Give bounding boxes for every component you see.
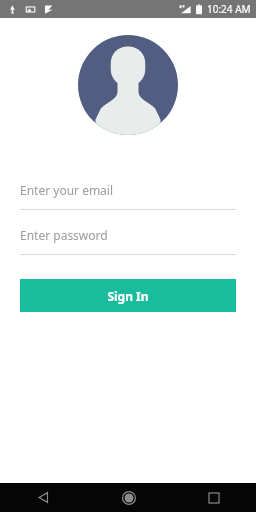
staticText: Enter password	[20, 227, 108, 243]
button[interactable]: Back	[0, 483, 86, 512]
button[interactable]: Sign In	[20, 279, 236, 312]
button[interactable]: Recent apps	[171, 483, 256, 512]
button[interactable]: Enter password	[20, 223, 236, 255]
button[interactable]: Home	[86, 483, 171, 512]
staticText: Sign In	[107, 288, 149, 304]
staticText: Enter your email	[20, 182, 114, 198]
staticText: 10:24 AM	[207, 2, 251, 16]
button[interactable]: Enter your email	[20, 178, 236, 210]
